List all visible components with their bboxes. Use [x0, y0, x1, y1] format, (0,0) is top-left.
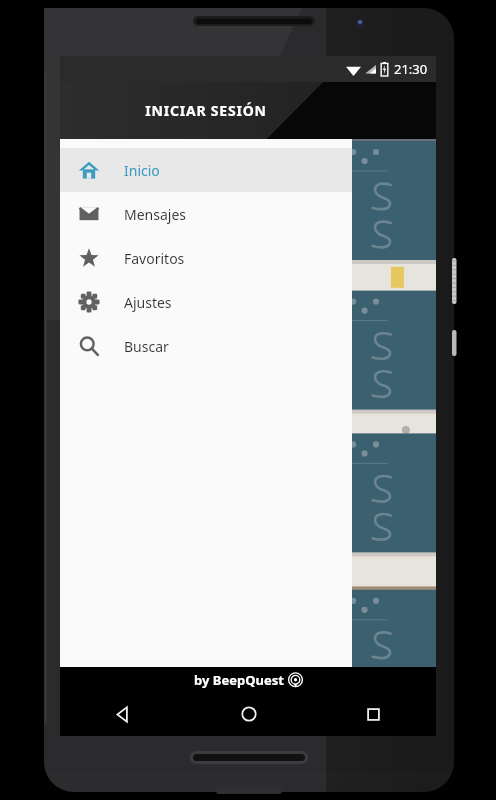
button[interactable]: Mensajes: [60, 192, 352, 236]
staticText: 21:30: [394, 60, 428, 78]
staticText: Ajustes: [124, 293, 172, 312]
staticText: Mensajes: [124, 205, 187, 224]
button[interactable]: Inicio: [60, 148, 352, 192]
staticText: INICIAR SESIÓN: [145, 101, 267, 120]
button[interactable]: Home: [186, 692, 311, 736]
button[interactable]: by BeepQuest: [194, 671, 303, 689]
button[interactable]: INICIAR SESIÓN: [60, 82, 352, 139]
staticText: by BeepQuest: [194, 671, 284, 689]
button[interactable]: Favoritos: [60, 236, 352, 280]
button[interactable]: Back: [60, 692, 186, 736]
staticText: Favoritos: [124, 249, 185, 268]
staticText: Inicio: [124, 161, 160, 180]
button[interactable]: Ajustes: [60, 280, 352, 324]
staticText: Buscar: [124, 337, 169, 356]
button[interactable]: Buscar: [60, 324, 352, 368]
button[interactable]: Recent apps: [311, 692, 436, 736]
